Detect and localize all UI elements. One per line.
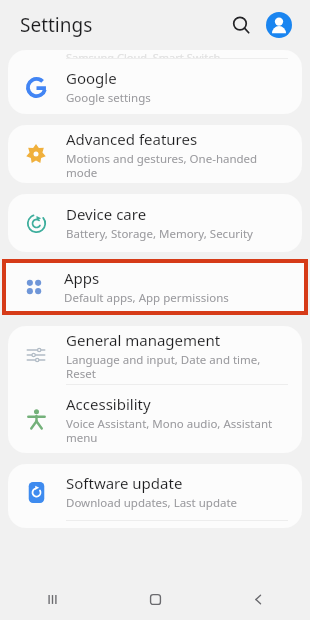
button[interactable]: Back bbox=[207, 578, 310, 620]
button[interactable]: Account bbox=[262, 8, 296, 42]
staticText: Google settings bbox=[66, 90, 151, 106]
staticText: Motions and gestures, One-handed mode bbox=[66, 151, 288, 180]
staticText: Software update bbox=[66, 473, 183, 493]
staticText: Samsung Cloud, Smart Switch bbox=[66, 50, 221, 58]
button[interactable]: Home bbox=[104, 578, 207, 620]
staticText: Google bbox=[66, 68, 117, 88]
staticText: General management bbox=[66, 330, 221, 350]
staticText: Download updates, Last update bbox=[66, 495, 238, 511]
staticText: Default apps, App permissions bbox=[64, 290, 229, 306]
staticText: Battery, Storage, Memory, Security bbox=[66, 226, 253, 242]
staticText: Apps bbox=[64, 268, 100, 288]
staticText: Settings bbox=[20, 12, 93, 38]
button[interactable]: General management bbox=[8, 326, 302, 384]
button[interactable]: Accessibility bbox=[8, 385, 302, 453]
button[interactable]: Device care bbox=[8, 194, 302, 252]
staticText: Advanced features bbox=[66, 129, 198, 149]
button[interactable]: Software update bbox=[8, 464, 302, 520]
button[interactable]: Search bbox=[224, 8, 258, 42]
button[interactable]: Google bbox=[8, 59, 302, 114]
staticText: Language and input, Date and time, Reset bbox=[66, 352, 288, 381]
staticText: Accessibility bbox=[66, 394, 151, 414]
button[interactable]: Advanced features bbox=[8, 125, 302, 183]
button[interactable]: Apps bbox=[6, 263, 304, 311]
button[interactable]: Recents bbox=[0, 578, 104, 620]
staticText: Voice Assistant, Mono audio, Assistant m… bbox=[66, 416, 288, 445]
staticText: Device care bbox=[66, 204, 147, 224]
